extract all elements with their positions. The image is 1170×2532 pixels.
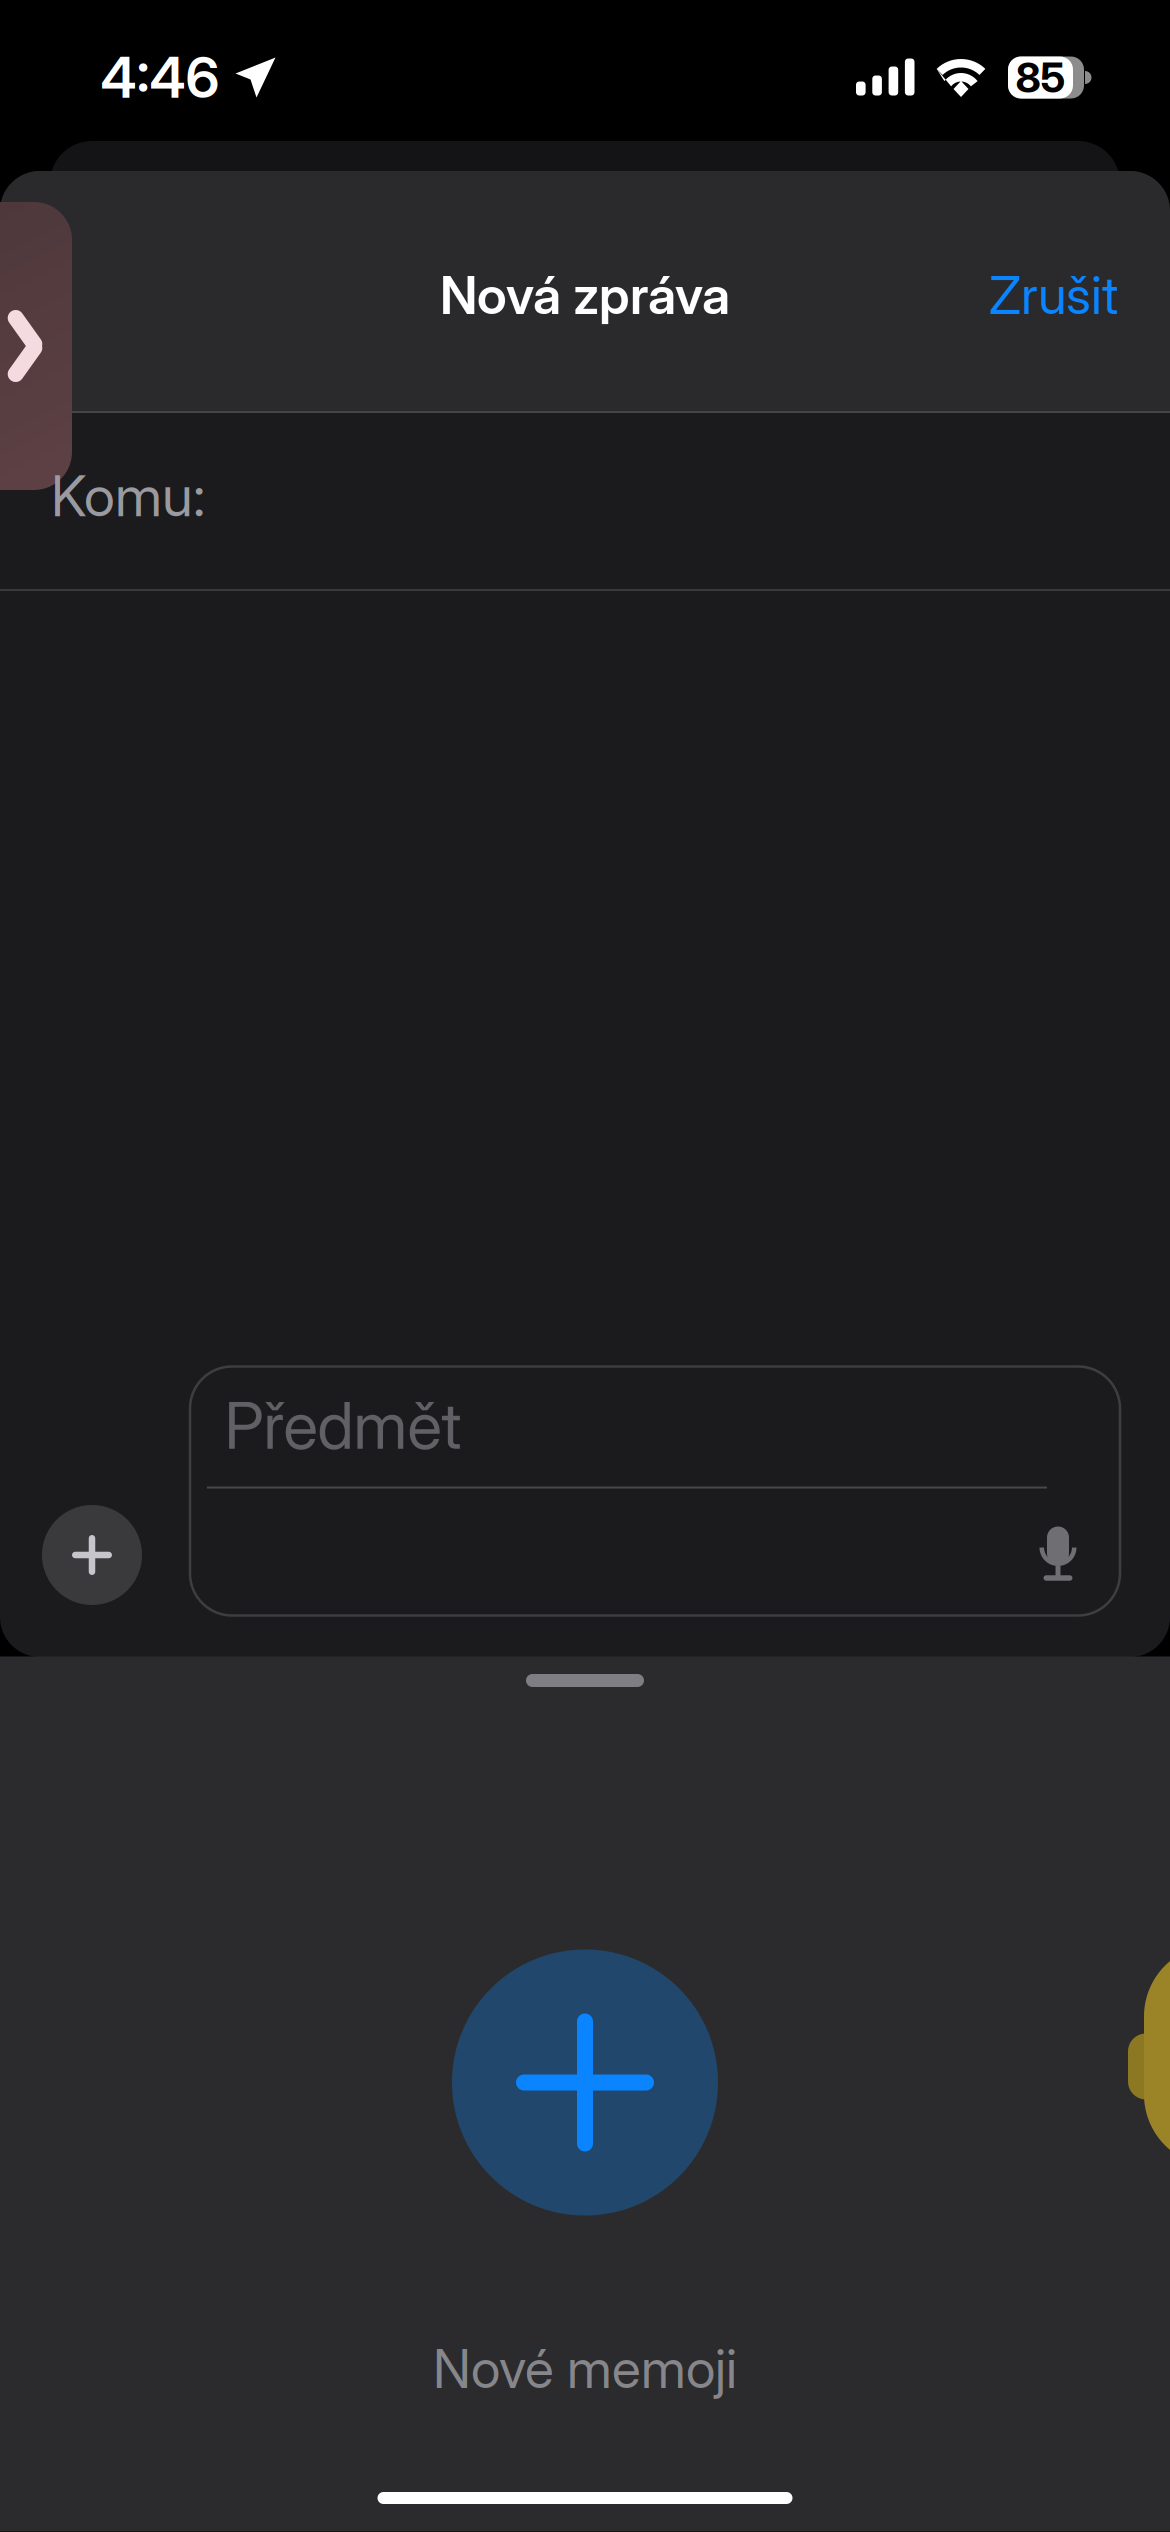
staticText: 4:46 (100, 44, 219, 111)
staticText: Nová zpráva (440, 263, 730, 326)
staticText: Předmět (224, 1387, 461, 1464)
button[interactable]: New memoji (452, 1949, 718, 2215)
staticText: Zrušit (989, 263, 1118, 326)
staticText: Komu: (51, 462, 205, 530)
button[interactable]: Zrušit (888, 243, 1118, 347)
staticText: Nové memoji (433, 2336, 737, 2401)
staticText: 85 (1015, 52, 1065, 102)
button[interactable]: Add attachment (42, 1505, 142, 1605)
